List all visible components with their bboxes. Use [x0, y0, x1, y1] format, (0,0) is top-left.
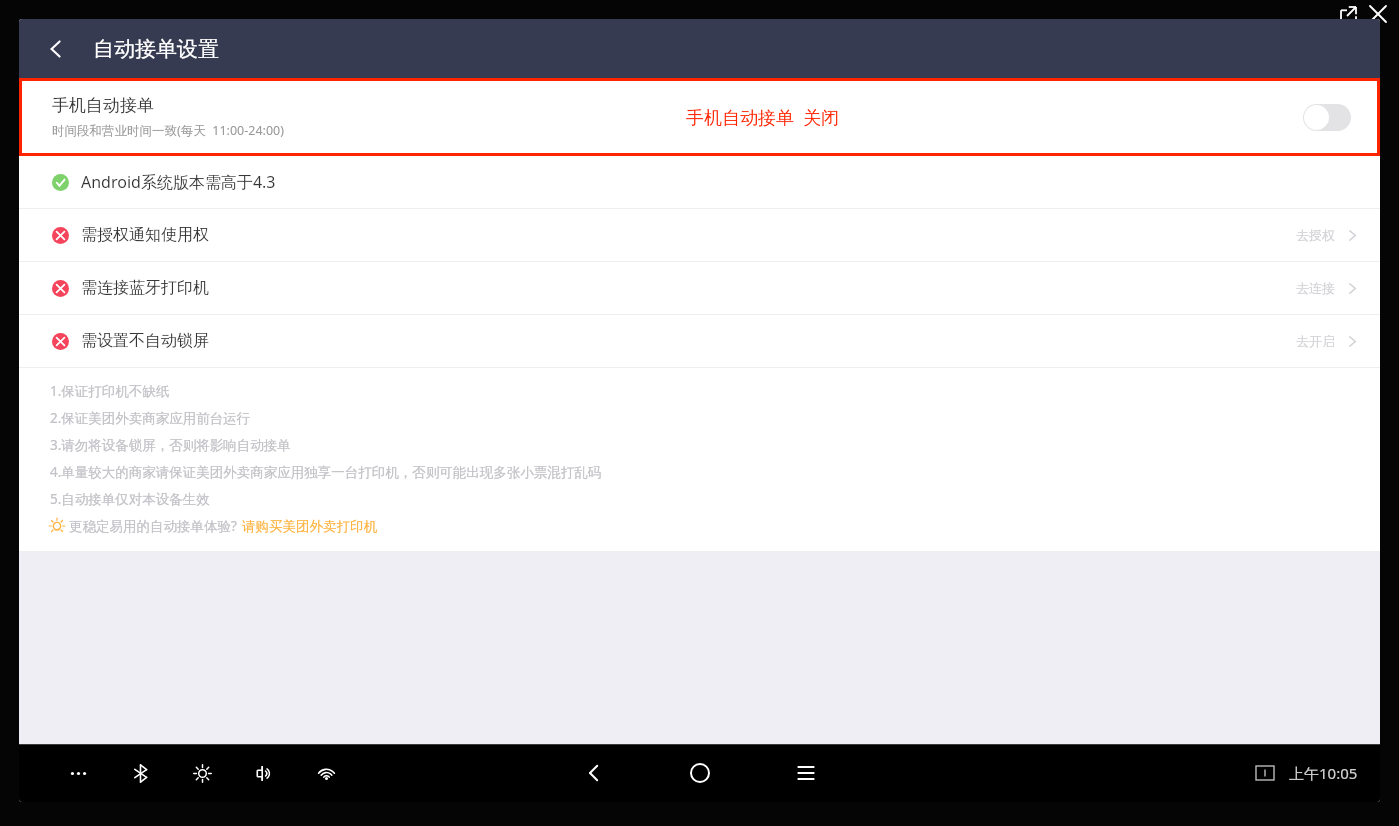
button[interactable]: 需连接蓝牙打印机	[19, 262, 1380, 314]
button[interactable]: Back	[568, 747, 620, 799]
staticText: 更稳定易用的自动接单体验?	[69, 517, 237, 535]
staticText: 上午10:05	[1289, 763, 1358, 783]
button[interactable]: Wi-Fi	[309, 756, 343, 790]
staticText: 4.单量较大的商家请保证美团外卖商家应用独享一台打印机，否则可能出现多张小票混打…	[50, 463, 602, 481]
staticText: 去连接	[1296, 280, 1335, 296]
staticText: 请购买美团外卖打印机	[242, 518, 377, 535]
button[interactable]: Close	[1365, 1, 1391, 27]
staticText: Android系统版本需高于4.3	[81, 171, 276, 193]
staticText: 需设置不自动锁屏	[81, 331, 209, 351]
button[interactable]: 请购买美团外卖打印机	[242, 518, 377, 535]
staticText: 去授权	[1296, 227, 1335, 243]
staticText: 手机自动接单	[52, 95, 154, 116]
staticText: 时间段和营业时间一致(每天 11:00-24:00)	[52, 122, 284, 139]
button[interactable]: Bluetooth	[123, 756, 157, 790]
staticText: 需连接蓝牙打印机	[81, 278, 209, 298]
button[interactable]: Brightness	[185, 756, 219, 790]
staticText: 1.保证打印机不缺纸	[50, 382, 170, 400]
button[interactable]: 需授权通知使用权	[19, 209, 1380, 261]
staticText: 需授权通知使用权	[81, 225, 209, 245]
button[interactable]: Recent apps	[780, 747, 832, 799]
button[interactable]: Window count	[1250, 760, 1280, 786]
button[interactable]: Toggle auto accept orders	[1303, 104, 1351, 131]
staticText: 2.保证美团外卖商家应用前台运行	[50, 409, 251, 427]
staticText: 自动接单设置	[93, 36, 219, 62]
button[interactable]: Home	[674, 747, 726, 799]
staticText: 5.自动接单仅对本设备生效	[50, 490, 210, 508]
button[interactable]: More	[61, 756, 95, 790]
staticText: 去开启	[1296, 333, 1335, 349]
button[interactable]: Volume	[247, 756, 281, 790]
staticText: 手机自动接单 关闭	[686, 105, 840, 130]
button[interactable]: Open in new window	[1335, 1, 1361, 27]
button[interactable]: 需设置不自动锁屏	[19, 315, 1380, 367]
staticText: 3.请勿将设备锁屏，否则将影响自动接单	[50, 436, 291, 454]
button[interactable]: Android系统版本需高于4.3	[19, 156, 1380, 208]
button[interactable]: Back	[19, 19, 93, 78]
button[interactable]: 手机自动接单	[22, 81, 1377, 153]
